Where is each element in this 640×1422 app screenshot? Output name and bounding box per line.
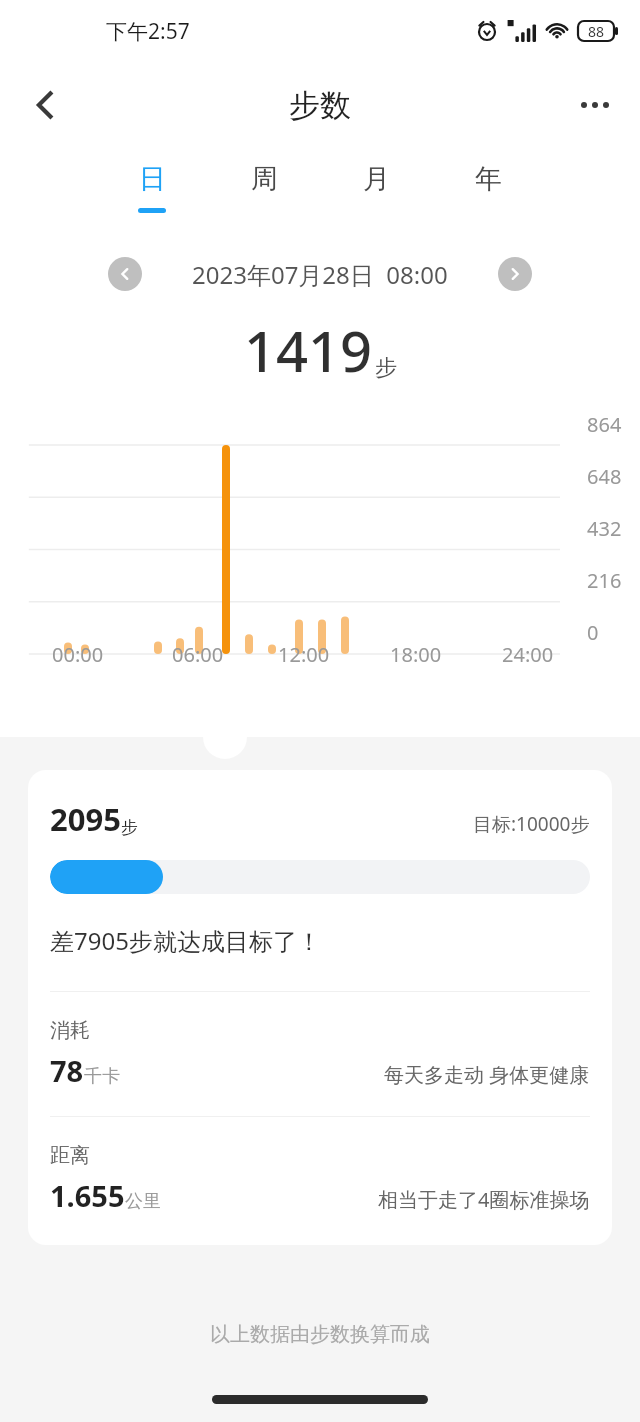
button[interactable]: 周 <box>208 148 320 244</box>
staticText: 日 <box>139 162 166 196</box>
staticText: 距离 <box>50 1143 90 1168</box>
staticText: 周 <box>251 162 278 196</box>
staticText: 06:00 <box>172 641 224 668</box>
staticText: 12:00 <box>278 641 330 668</box>
staticText: 864 <box>587 411 622 438</box>
staticText: 下午2:57 <box>106 17 190 46</box>
button[interactable]: Next day <box>498 257 532 291</box>
button[interactable]: 日 <box>96 148 208 244</box>
staticText: 432 <box>587 515 622 542</box>
button[interactable]: Previous day <box>108 257 142 291</box>
staticText: 以上数据由步数换算而成 <box>210 1322 430 1347</box>
staticText: 648 <box>587 463 622 490</box>
staticText: 公里 <box>125 1190 161 1213</box>
staticText: 步数 <box>289 86 351 125</box>
staticText: 216 <box>587 567 622 594</box>
staticText: 24:00 <box>502 641 554 668</box>
staticText: 88 <box>588 22 605 41</box>
button[interactable]: 月 <box>320 148 432 244</box>
staticText: 1.655 <box>50 1176 125 1215</box>
staticText: 消耗 <box>50 1018 90 1043</box>
button[interactable]: More options <box>564 74 626 136</box>
staticText: 年 <box>475 162 502 196</box>
button[interactable]: 年 <box>432 148 544 244</box>
staticText: 18:00 <box>390 641 442 668</box>
staticText: 78 <box>50 1051 84 1090</box>
staticText: 月 <box>363 162 390 196</box>
staticText: 目标:10000步 <box>473 811 590 837</box>
staticText: 2023年07月28日 08:00 <box>192 258 448 291</box>
staticText: 1419 <box>244 312 373 388</box>
staticText: 步 <box>375 354 397 382</box>
staticText: 差7905步就达成目标了！ <box>50 924 321 957</box>
button[interactable]: Back <box>14 74 76 136</box>
staticText: 0 <box>587 619 599 646</box>
staticText: 步 <box>121 817 138 838</box>
staticText: 千卡 <box>84 1065 120 1088</box>
staticText: 2095 <box>50 798 121 840</box>
staticText: 相当于走了4圈标准操场 <box>378 1186 590 1213</box>
staticText: 每天多走动 身体更健康 <box>384 1061 590 1088</box>
staticText: 00:00 <box>52 641 104 668</box>
